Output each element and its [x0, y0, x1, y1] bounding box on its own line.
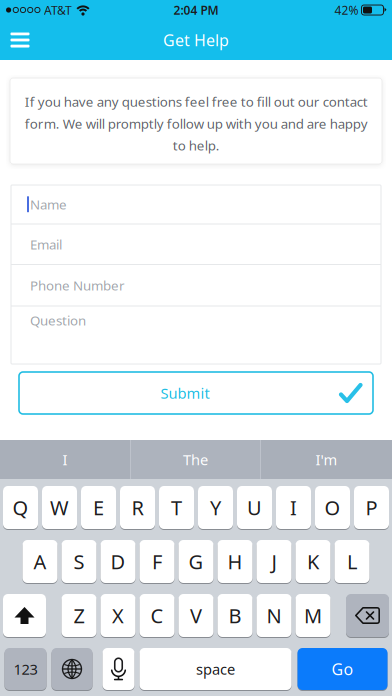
button[interactable]: Menu [0, 20, 40, 60]
staticText: C [150, 602, 163, 629]
button[interactable]: V [178, 594, 213, 637]
staticText: L [347, 548, 357, 575]
staticText: space [196, 659, 235, 679]
button[interactable]: G [178, 540, 213, 583]
button[interactable]: K [295, 540, 330, 583]
button[interactable]: Go [297, 648, 387, 690]
staticText: M [304, 602, 322, 629]
staticText: N [266, 602, 281, 629]
button[interactable]: space [139, 648, 291, 690]
staticText: H [227, 548, 242, 575]
staticText: F [152, 548, 162, 575]
button[interactable]: O [315, 486, 350, 529]
button[interactable]: Question [12, 306, 380, 364]
staticText: D [110, 548, 125, 575]
staticText: O [324, 494, 340, 521]
button[interactable]: Z [61, 594, 96, 637]
button[interactable]: Delete [346, 594, 389, 637]
staticText: X [112, 602, 124, 629]
button[interactable]: The [131, 440, 260, 479]
button[interactable]: H [217, 540, 252, 583]
button[interactable]: Dictate [102, 648, 134, 690]
staticText: B [228, 602, 241, 629]
staticText: K [307, 548, 319, 575]
staticText: AT&T [44, 2, 72, 18]
button[interactable]: B [217, 594, 252, 637]
staticText: Go [331, 658, 353, 680]
staticText: U [247, 494, 262, 521]
button[interactable]: P [354, 486, 389, 529]
staticText: I'm [315, 450, 337, 469]
button[interactable]: X [100, 594, 135, 637]
button[interactable]: Y [198, 486, 233, 529]
button[interactable]: Phone Number [12, 265, 380, 305]
button[interactable]: Q [3, 486, 38, 529]
staticText: T [171, 494, 182, 521]
staticText: R [131, 494, 143, 521]
button[interactable]: I'm [261, 440, 392, 479]
button[interactable]: A [22, 540, 57, 583]
staticText: A [33, 548, 46, 575]
staticText: Get Help [163, 29, 229, 51]
staticText: I [290, 494, 297, 521]
staticText: If you have any questions feel free to f… [24, 93, 367, 154]
button[interactable]: E [81, 486, 116, 529]
staticText: V [190, 602, 202, 629]
staticText: 2:04 PM [173, 2, 218, 18]
staticText: 123 [13, 659, 37, 679]
button[interactable]: M [295, 594, 330, 637]
button[interactable]: R [120, 486, 155, 529]
staticText: Q [12, 494, 28, 521]
button[interactable]: D [100, 540, 135, 583]
staticText: Y [210, 494, 221, 521]
button[interactable]: L [334, 540, 369, 583]
button[interactable]: I [0, 440, 130, 479]
button[interactable]: Next keyboard [51, 648, 92, 690]
staticText: Question [30, 311, 86, 329]
staticText: J [271, 548, 276, 575]
button[interactable]: U [237, 486, 272, 529]
button[interactable]: Email [12, 224, 380, 264]
button[interactable]: N [256, 594, 291, 637]
staticText: G [188, 548, 203, 575]
staticText: Z [73, 602, 84, 629]
button[interactable]: C [139, 594, 174, 637]
staticText: W [50, 494, 69, 521]
staticText: The [183, 450, 208, 469]
button[interactable]: S [61, 540, 96, 583]
staticText: E [93, 494, 104, 521]
button[interactable]: I [276, 486, 311, 529]
staticText: Phone Number [30, 276, 125, 294]
staticText: Submit [160, 383, 209, 403]
staticText: P [365, 494, 377, 521]
button[interactable]: Submit [19, 372, 373, 414]
button[interactable]: W [42, 486, 77, 529]
button[interactable]: T [159, 486, 194, 529]
staticText: S [73, 548, 84, 575]
button[interactable]: J [256, 540, 291, 583]
staticText: I [62, 450, 67, 469]
staticText: Email [30, 235, 62, 253]
staticText: 42% [334, 2, 358, 18]
button[interactable]: Shift [3, 594, 46, 637]
staticText: Name [30, 195, 67, 213]
button[interactable]: 123 [4, 648, 46, 690]
button[interactable]: Name [12, 185, 380, 223]
button[interactable]: F [139, 540, 174, 583]
